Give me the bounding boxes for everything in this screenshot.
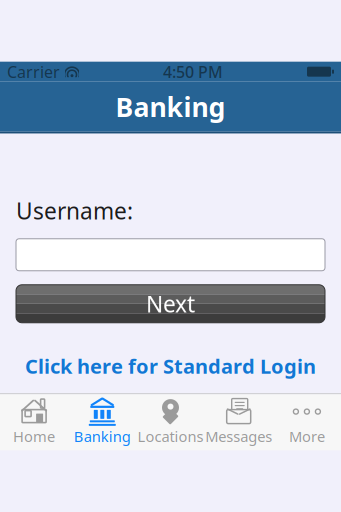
button[interactable]: Locations xyxy=(136,395,205,450)
staticText: Messages xyxy=(205,427,272,446)
staticText: Click here for Standard Login xyxy=(25,353,316,379)
staticText: Locations xyxy=(137,427,203,446)
button[interactable]: Banking xyxy=(68,395,136,450)
staticText: Home xyxy=(13,427,55,446)
button[interactable]: More xyxy=(273,395,341,450)
button[interactable]: Next xyxy=(0,285,341,323)
staticText: Banking xyxy=(115,89,225,124)
staticText: More xyxy=(289,427,325,446)
button[interactable]: Click here for Standard Login xyxy=(0,347,341,385)
staticText: Carrier xyxy=(7,61,60,82)
staticText: Next xyxy=(146,289,195,319)
button[interactable]: Messages xyxy=(205,395,273,450)
staticText: Banking xyxy=(74,427,131,446)
button[interactable]: Home xyxy=(0,395,68,450)
staticText: Username: xyxy=(16,196,133,226)
staticText: 4:50 PM xyxy=(163,61,223,82)
